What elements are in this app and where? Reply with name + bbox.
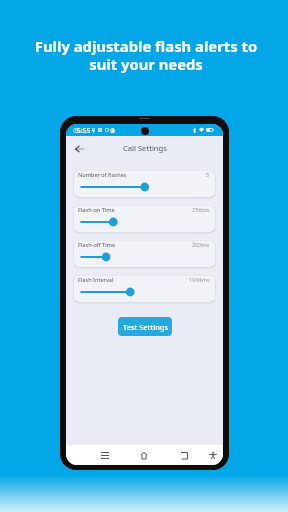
button[interactable]: Accessibility xyxy=(204,445,222,465)
button[interactable]: Home xyxy=(135,445,153,465)
staticText: 5:55 xyxy=(77,126,91,135)
staticText: Test Settings xyxy=(123,322,168,332)
button[interactable]: Flash-on Time xyxy=(74,206,215,232)
staticText: 203ms xyxy=(192,241,210,249)
staticText: 5 xyxy=(206,171,210,179)
staticText: 1934ms xyxy=(189,276,210,284)
button[interactable]: Flash Interval xyxy=(74,276,215,302)
button[interactable]: Back xyxy=(71,141,87,157)
staticText: Flash-off Time xyxy=(78,241,116,249)
staticText: Fully adjustable flash alerts to suit yo… xyxy=(12,36,280,74)
button[interactable]: Back xyxy=(176,445,194,465)
button[interactable]: Flash-off Time xyxy=(74,241,215,267)
button[interactable]: Recents xyxy=(96,445,114,465)
staticText: Flash Interval xyxy=(78,276,114,284)
staticText: 256ms xyxy=(192,206,210,214)
button[interactable]: Number of flashes xyxy=(74,171,215,197)
staticText: Flash-on Time xyxy=(78,206,115,214)
staticText: Call Settings xyxy=(123,143,167,153)
staticText: Number of flashes xyxy=(78,171,127,179)
button[interactable]: Test Settings xyxy=(118,317,172,336)
